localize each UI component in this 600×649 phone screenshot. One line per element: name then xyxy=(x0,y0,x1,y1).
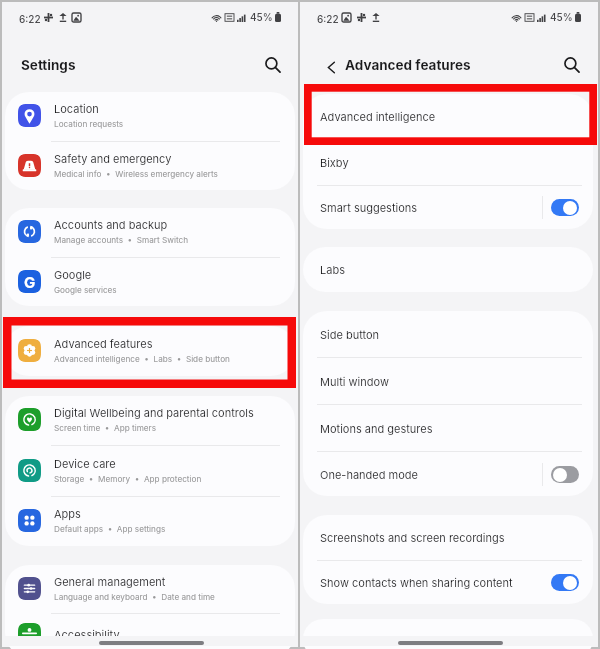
staticText: Show contacts when sharing content xyxy=(320,576,551,589)
button[interactable]: Digital Wellbeing and parental controls xyxy=(5,396,295,445)
button[interactable]: Show contacts when sharing content xyxy=(303,561,593,604)
staticText: Language and keyboard • Date and time xyxy=(54,592,215,602)
button[interactable]: Bixby xyxy=(303,139,593,185)
staticText: Settings xyxy=(21,57,76,73)
staticText: Advanced intelligence • Labs • Side butt… xyxy=(54,354,230,364)
button[interactable]: Back xyxy=(318,54,344,80)
staticText: Google xyxy=(54,268,92,281)
staticText: Labs xyxy=(320,263,579,276)
staticText: 45% xyxy=(250,11,273,23)
button[interactable]: On xyxy=(551,199,579,216)
staticText: Side button xyxy=(320,328,579,341)
button[interactable]: Off xyxy=(551,466,579,483)
staticText: General management xyxy=(54,575,166,588)
staticText: Accounts and backup xyxy=(54,218,168,231)
staticText: Advanced intelligence xyxy=(320,110,579,123)
staticText: Advanced features xyxy=(54,337,153,350)
button[interactable]: Motions and gestures xyxy=(303,405,593,451)
staticText: Safety and emergency xyxy=(54,152,172,165)
button[interactable]: Accounts and backup xyxy=(5,208,295,257)
staticText: Location xyxy=(54,102,99,115)
button[interactable]: Apps xyxy=(5,497,295,546)
staticText: Bixby xyxy=(320,156,579,169)
button[interactable]: G xyxy=(5,258,295,306)
button[interactable]: One-handed mode xyxy=(303,452,593,496)
staticText: Device care xyxy=(54,457,116,470)
staticText: Apps xyxy=(54,507,81,520)
staticText: Digital Wellbeing and parental controls xyxy=(54,406,254,419)
button[interactable]: Search xyxy=(560,53,584,77)
staticText: 6:22 xyxy=(19,13,41,25)
button[interactable]: Accessibility xyxy=(5,614,295,649)
staticText: Medical info • Wireless emergency alerts xyxy=(54,169,218,179)
button[interactable]: Labs xyxy=(303,247,593,292)
staticText: Google services xyxy=(54,285,117,295)
button[interactable]: Advanced intelligence xyxy=(303,94,593,138)
button[interactable]: Safety and emergency xyxy=(5,142,295,190)
staticText: Motions and gestures xyxy=(320,422,579,435)
staticText: Manage accounts • Smart Switch xyxy=(54,235,189,245)
button[interactable]: Device care xyxy=(5,446,295,496)
staticText: Screenshots and screen recordings xyxy=(320,531,579,544)
button[interactable]: Advanced features xyxy=(5,326,295,376)
staticText: Advanced features xyxy=(345,57,471,73)
button[interactable]: General management xyxy=(5,565,295,613)
staticText: 6:22 xyxy=(317,13,339,25)
staticText: Accessibility xyxy=(54,628,120,641)
staticText: Multi window xyxy=(320,375,579,388)
button[interactable]: Screenshots and screen recordings xyxy=(303,515,593,560)
staticText: Default apps • App settings xyxy=(54,524,166,534)
button[interactable]: Side button xyxy=(303,311,593,357)
staticText: Location requests xyxy=(54,119,124,129)
button[interactable]: On xyxy=(551,574,579,591)
button[interactable]: Multi window xyxy=(303,358,593,404)
staticText: G xyxy=(24,273,36,291)
staticText: Smart suggestions xyxy=(320,201,542,214)
button[interactable]: Smart suggestions xyxy=(303,186,593,229)
staticText: Storage • Memory • App protection xyxy=(54,474,202,484)
button[interactable]: Search xyxy=(261,53,285,77)
staticText: Screen time • App timers xyxy=(54,423,156,433)
staticText: 45% xyxy=(550,11,573,23)
staticText: One-handed mode xyxy=(320,468,542,481)
button[interactable]: Location xyxy=(5,92,295,141)
